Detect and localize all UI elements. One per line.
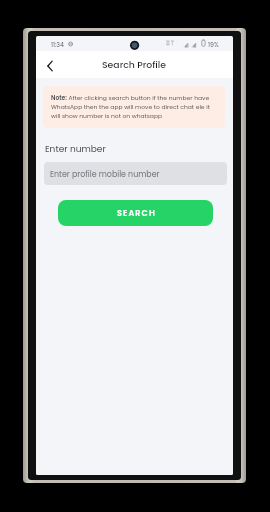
staticText: Note: After clicking search button if th… [51,94,210,102]
staticText: 19% [208,40,219,49]
staticText: SEARCH [117,207,156,218]
staticText: Enter profile mobile number [50,169,160,180]
staticText: Search Profile [102,58,167,71]
staticText: Enter number [45,143,106,156]
button[interactable]: SEARCH [58,200,213,226]
button[interactable]: Back [40,55,60,75]
staticText: WhatsApp then the app will move to direc… [51,103,210,111]
staticText: will show number is not on whatsapp [51,112,163,120]
staticText: 11:34 [51,40,64,49]
button[interactable]: Enter profile mobile number [44,162,227,185]
